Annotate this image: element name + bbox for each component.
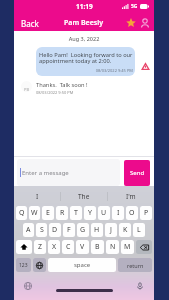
button[interactable]: B xyxy=(91,240,104,254)
staticText: K xyxy=(123,225,128,235)
staticText: Z xyxy=(38,242,43,252)
staticText: T xyxy=(74,208,78,218)
button[interactable]: J xyxy=(105,223,117,237)
button[interactable]: Y xyxy=(84,206,96,220)
staticText: U xyxy=(101,208,107,218)
staticText: PB xyxy=(24,87,30,92)
staticText: I'm xyxy=(126,192,136,201)
staticText: M xyxy=(124,242,131,252)
staticText: N xyxy=(110,242,116,252)
button[interactable]: Send xyxy=(124,160,150,186)
staticText: J xyxy=(110,225,112,235)
staticText: O xyxy=(129,208,135,218)
button[interactable]: The xyxy=(61,186,107,206)
staticText: 123 xyxy=(19,262,28,269)
button[interactable]: W xyxy=(29,206,40,220)
staticText: E xyxy=(46,208,50,218)
button[interactable]: I xyxy=(14,186,60,206)
staticText: return xyxy=(127,262,144,269)
staticText: 5G xyxy=(131,3,138,10)
button[interactable]: P xyxy=(140,206,152,220)
button[interactable]: U xyxy=(98,206,110,220)
button[interactable]: I xyxy=(112,206,124,220)
button[interactable] xyxy=(136,240,152,254)
button[interactable]: Dictate xyxy=(135,281,145,291)
button[interactable]: N xyxy=(106,240,119,254)
button[interactable]: Back xyxy=(17,16,43,31)
staticText: space xyxy=(74,261,91,269)
button[interactable]: T xyxy=(70,206,82,220)
staticText: Send xyxy=(130,169,145,177)
staticText: 08/03/2022 9:45 PM xyxy=(39,68,133,73)
button[interactable]: A xyxy=(23,223,34,237)
staticText: V xyxy=(80,242,85,252)
staticText: W xyxy=(31,208,38,218)
staticText: Aug 3, 2022 xyxy=(14,35,154,42)
button[interactable]: M xyxy=(121,240,134,254)
button[interactable]: Z xyxy=(34,240,46,254)
button[interactable]: S xyxy=(36,223,47,237)
button[interactable]: space xyxy=(48,258,116,272)
button[interactable]: G xyxy=(77,223,89,237)
button[interactable]: Enter a message xyxy=(17,159,120,186)
button[interactable]: D xyxy=(49,223,61,237)
button[interactable]: I'm xyxy=(108,186,154,206)
staticText: B xyxy=(95,242,100,252)
button[interactable]: K xyxy=(119,223,131,237)
staticText: P xyxy=(144,208,149,218)
staticText: L xyxy=(137,225,141,235)
staticText: S xyxy=(40,225,44,235)
button[interactable]: Favorite xyxy=(124,16,138,30)
button[interactable]: H xyxy=(91,223,103,237)
button[interactable]: E xyxy=(42,206,54,220)
staticText: F xyxy=(67,225,71,235)
staticText: X xyxy=(52,242,57,252)
staticText: H xyxy=(94,225,100,235)
button[interactable]: C xyxy=(62,240,74,254)
staticText: D xyxy=(52,225,58,235)
staticText: R xyxy=(60,208,65,218)
staticText: I xyxy=(117,208,120,218)
staticText: G xyxy=(80,225,86,235)
staticText: C xyxy=(66,242,71,252)
button[interactable]: L xyxy=(133,223,145,237)
staticText: The xyxy=(78,192,90,201)
staticText: A xyxy=(26,225,31,235)
button[interactable]: return xyxy=(118,258,152,272)
staticText: Pam Beesly xyxy=(64,18,104,28)
button[interactable]: 123 xyxy=(16,258,31,272)
staticText: Y xyxy=(88,208,92,218)
button[interactable]: Q xyxy=(16,206,27,220)
button[interactable]: X xyxy=(48,240,60,254)
button[interactable]: F xyxy=(63,223,75,237)
staticText: Q xyxy=(19,208,25,218)
button[interactable]: V xyxy=(76,240,89,254)
staticText: Thanks. Talk soon ! xyxy=(36,81,88,89)
staticText: Back xyxy=(21,18,39,29)
button[interactable] xyxy=(16,240,32,254)
button[interactable]: Change keyboard xyxy=(23,281,33,291)
button[interactable]: Switch language xyxy=(33,258,46,272)
button[interactable]: R xyxy=(56,206,68,220)
button[interactable]: O xyxy=(126,206,138,220)
button[interactable]: Contact info xyxy=(138,16,152,30)
staticText: Enter a message xyxy=(22,169,69,177)
staticText: 11:19 xyxy=(76,2,93,11)
staticText: 08/03/2022 9:50 PM xyxy=(36,90,74,95)
staticText: Hello Pam! Looking forward to our appoin… xyxy=(39,51,133,65)
staticText: I xyxy=(36,192,39,201)
